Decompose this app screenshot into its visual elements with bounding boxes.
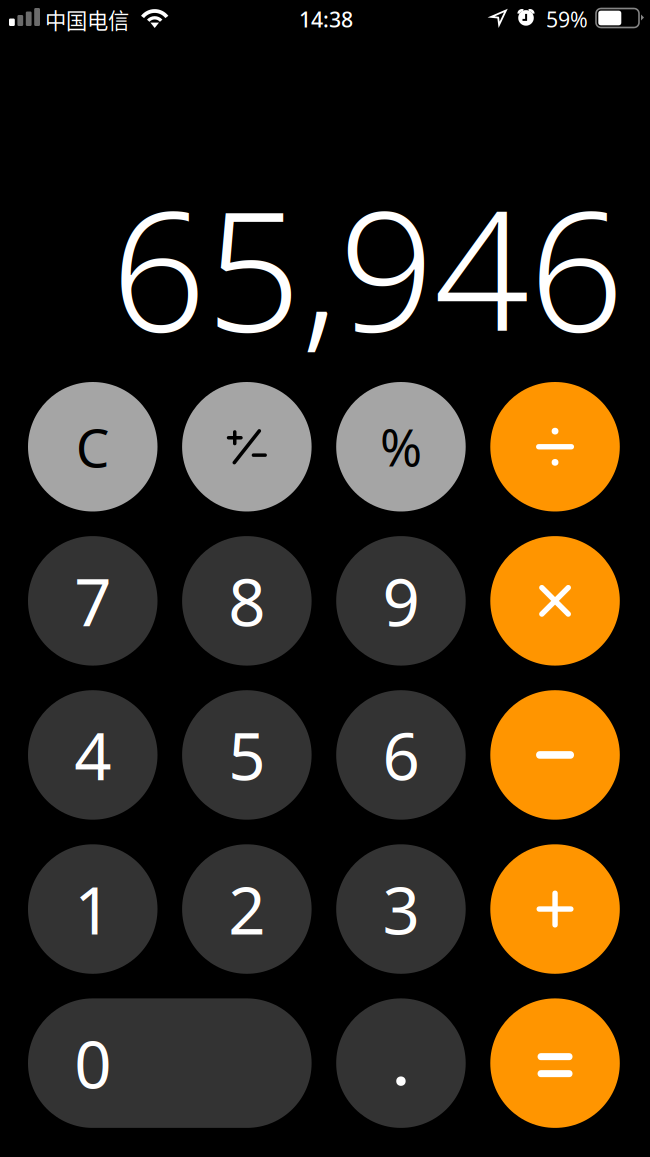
staticText: 3 [382, 866, 419, 952]
button[interactable]: 2 [182, 844, 312, 974]
button[interactable]: plus [490, 844, 620, 974]
button[interactable]: 8 [182, 536, 312, 666]
staticText: C [76, 411, 110, 482]
staticText: 7 [74, 557, 111, 644]
staticText: 4 [74, 712, 111, 798]
button[interactable]: C [28, 382, 157, 511]
staticText: 8 [228, 557, 265, 644]
button[interactable]: plus minus [182, 382, 312, 511]
button[interactable]: 7 [28, 536, 157, 666]
button[interactable]: divide [490, 382, 620, 511]
button[interactable]: 1 [28, 844, 157, 974]
staticText: 59% [546, 5, 588, 33]
button[interactable]: 4 [28, 690, 157, 820]
button[interactable]: 9 [336, 536, 466, 666]
staticText: 1 [74, 866, 111, 952]
staticText: 5 [228, 712, 265, 798]
button[interactable]: 5 [182, 690, 312, 820]
staticText: % [380, 413, 422, 480]
staticText: 2 [228, 866, 265, 952]
button[interactable]: 3 [336, 844, 466, 974]
staticText: 中国电信 [45, 4, 129, 35]
staticText: 0 [74, 1020, 111, 1107]
staticText: 65,946 [111, 156, 624, 377]
button[interactable]: minus [490, 690, 620, 820]
button[interactable]: 6 [336, 690, 466, 820]
staticText: 9 [382, 557, 419, 644]
button[interactable]: multiply [490, 536, 620, 666]
staticText: 14:38 [299, 5, 353, 33]
button[interactable]: equals [490, 998, 620, 1128]
staticText: 6 [382, 712, 419, 798]
button[interactable]: decimal point [336, 998, 466, 1128]
button[interactable]: % [336, 382, 466, 511]
button[interactable]: 0 [28, 998, 312, 1128]
